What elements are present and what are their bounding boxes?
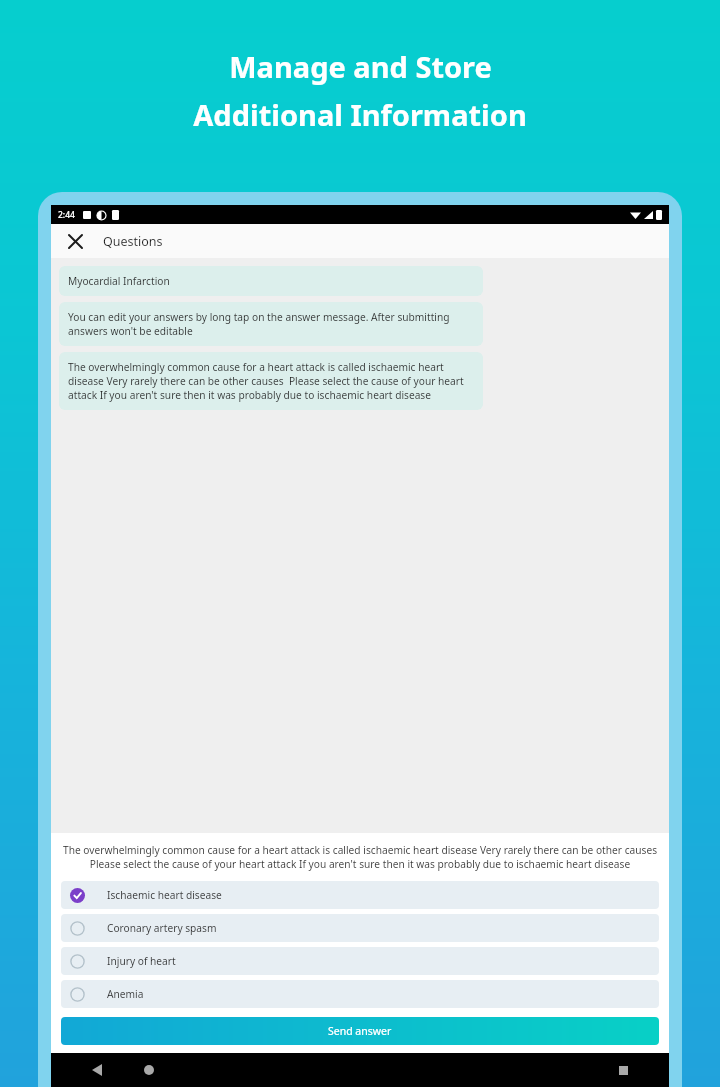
staticText: Coronary artery spasm <box>107 921 217 935</box>
staticText: Send answer <box>328 1024 392 1038</box>
staticText: 2:44 <box>58 209 75 221</box>
button[interactable]: Ischaemic heart disease <box>61 881 659 909</box>
button[interactable]: Coronary artery spasm <box>61 914 659 942</box>
button[interactable]: The overwhelmingly common cause for a he… <box>59 352 483 410</box>
button[interactable]: Myocardial Infarction <box>59 266 483 296</box>
button[interactable]: You can edit your answers by long tap on… <box>59 302 483 346</box>
button[interactable]: Injury of heart <box>61 947 659 975</box>
staticText: Manage and Store <box>229 47 492 86</box>
button[interactable]: Close <box>61 227 89 255</box>
staticText: You can edit your answers by long tap on… <box>68 310 474 338</box>
staticText: Additional Information <box>193 95 527 134</box>
staticText: The overwhelmingly common cause for a he… <box>61 843 659 871</box>
button[interactable]: Recent apps <box>611 1058 635 1082</box>
staticText: Myocardial Infarction <box>68 274 170 288</box>
button[interactable]: Send answer <box>61 1017 659 1045</box>
staticText: Questions <box>103 233 163 250</box>
staticText: Anemia <box>107 987 144 1001</box>
staticText: Ischaemic heart disease <box>107 888 222 902</box>
staticText: The overwhelmingly common cause for a he… <box>68 360 474 402</box>
staticText: Injury of heart <box>107 954 176 968</box>
button[interactable]: Back <box>85 1058 109 1082</box>
button[interactable]: Home <box>137 1058 161 1082</box>
button[interactable]: Anemia <box>61 980 659 1008</box>
